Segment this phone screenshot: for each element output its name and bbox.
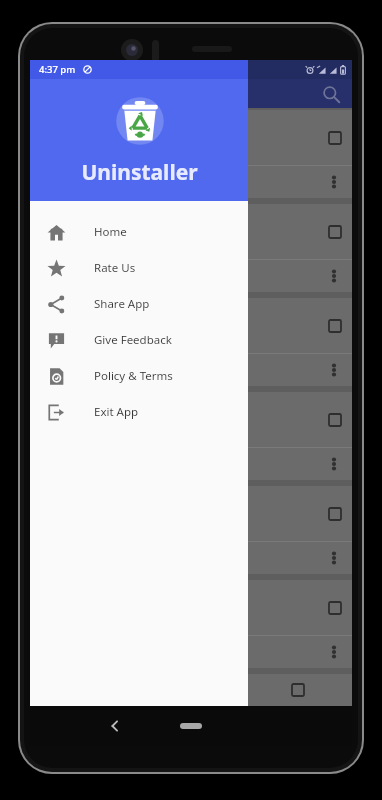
button[interactable]: Select app <box>328 225 342 239</box>
button[interactable]: Policy & Terms <box>30 358 248 394</box>
button[interactable]: Select app <box>328 319 342 333</box>
button[interactable]: 21 MB <box>30 110 352 198</box>
button[interactable]: 8.2 MB <box>30 298 352 386</box>
button[interactable]: Details <box>84 268 100 284</box>
staticText: Uninstaller <box>81 158 198 187</box>
button[interactable]: Share App <box>30 286 248 322</box>
button[interactable]: Home <box>180 723 202 729</box>
staticText: 26 MB <box>84 233 111 245</box>
button[interactable]: More options <box>326 362 342 378</box>
staticText: Policy & Terms <box>94 368 173 384</box>
staticText: Give Feedback <box>94 332 172 348</box>
staticText: Share App <box>94 296 150 312</box>
staticText: Rate Us <box>94 260 136 276</box>
button[interactable]: Select app <box>328 131 342 145</box>
button[interactable]: More options <box>326 456 342 472</box>
button[interactable]: 14 MB <box>30 580 352 668</box>
button[interactable]: Uninstall <box>40 268 56 284</box>
button[interactable]: More options <box>326 550 342 566</box>
button[interactable]: Give Feedback <box>30 322 248 358</box>
button[interactable]: More options <box>326 644 342 660</box>
staticText: Home <box>94 224 127 240</box>
button[interactable]: Details <box>84 174 100 190</box>
button[interactable]: Exit App <box>30 394 248 430</box>
button[interactable]: More options <box>326 268 342 284</box>
button[interactable]: Details <box>84 362 100 378</box>
button[interactable]: 22 MB <box>30 486 352 574</box>
staticText: Exit App <box>94 404 139 420</box>
button[interactable]: Uninstall <box>40 362 56 378</box>
button[interactable]: 26 MB <box>30 204 352 292</box>
button[interactable]: Select app <box>328 413 342 427</box>
button[interactable]: Select app <box>328 601 342 615</box>
button[interactable]: Search <box>320 83 342 105</box>
button[interactable]: Home <box>30 214 248 250</box>
button[interactable]: Back <box>102 713 128 739</box>
button[interactable]: Rate Us <box>30 250 248 286</box>
staticText: 8.2 MB <box>84 327 114 339</box>
button[interactable]: 31 MB <box>30 392 352 480</box>
staticText: 4:37 pm <box>39 63 76 76</box>
button[interactable]: Select app <box>291 683 305 697</box>
button[interactable]: Select app <box>328 507 342 521</box>
button[interactable]: More options <box>326 174 342 190</box>
